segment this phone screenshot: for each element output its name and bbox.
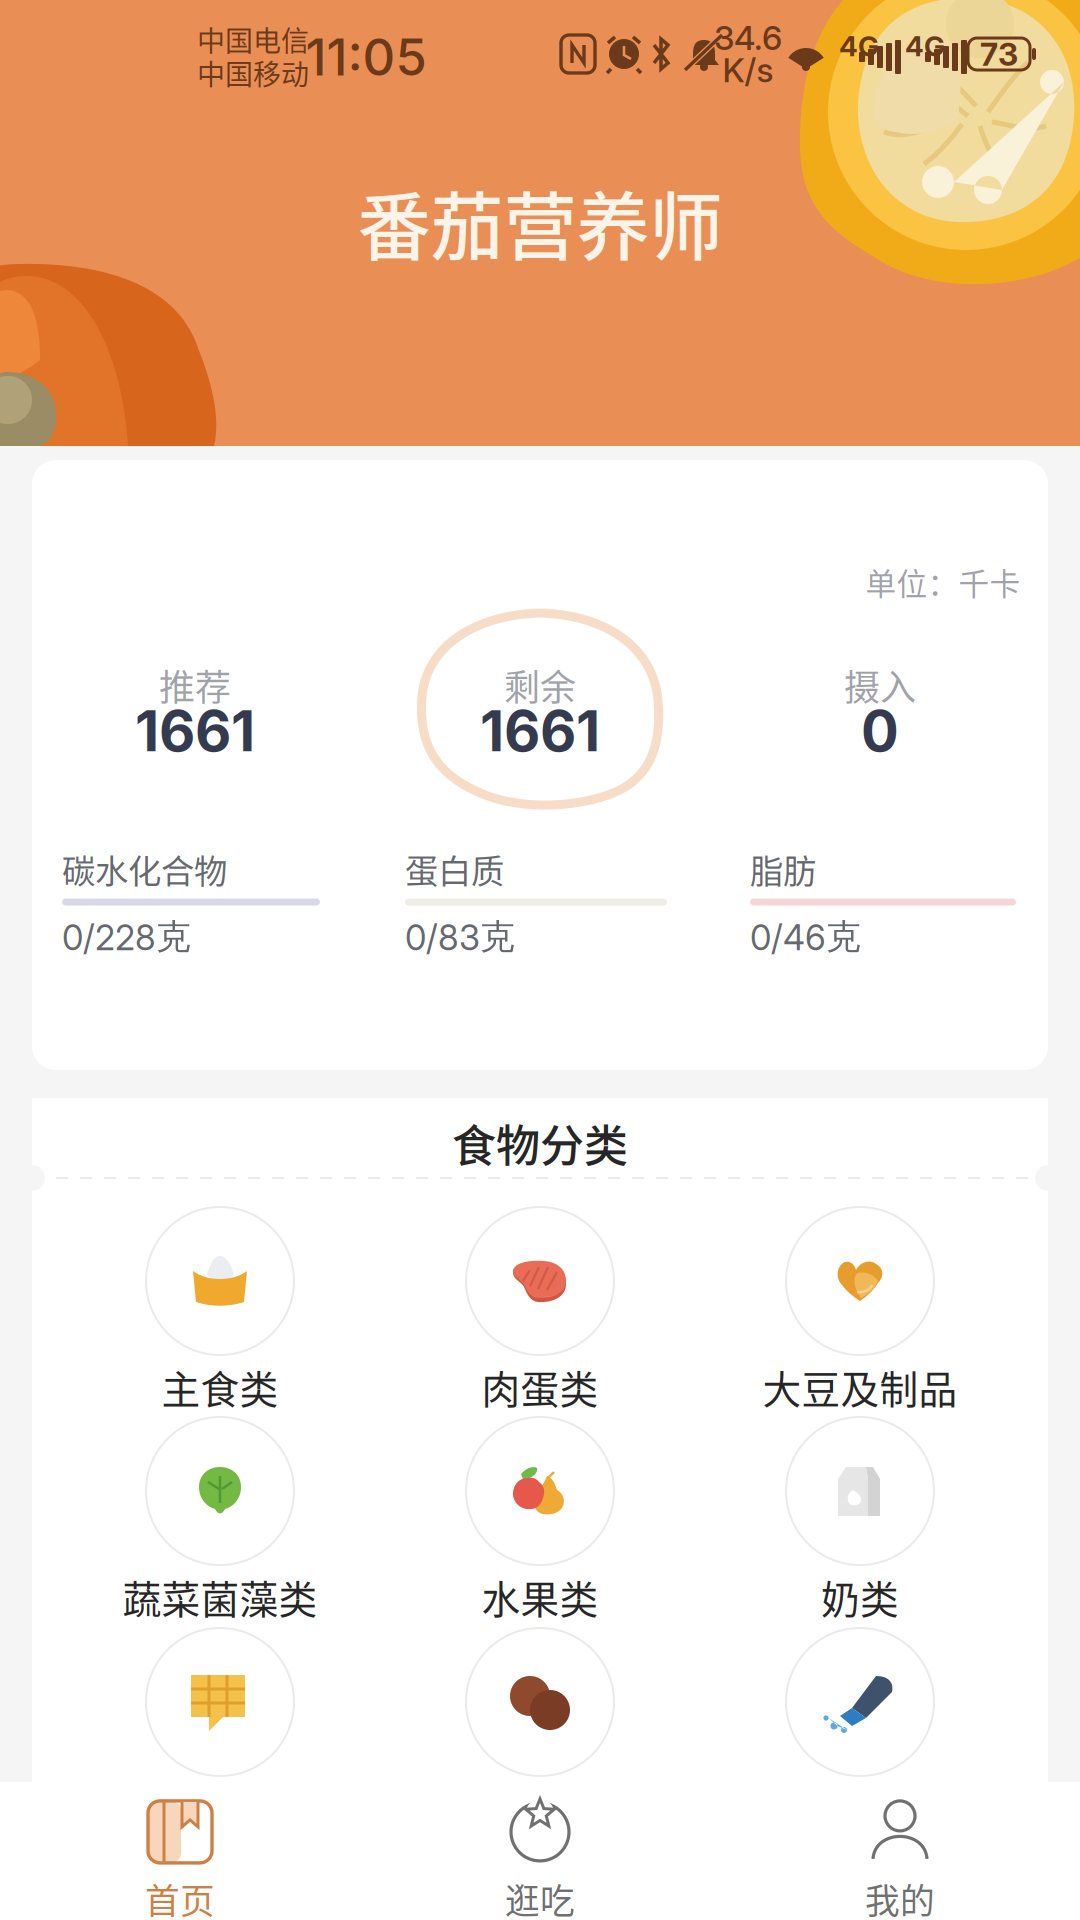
button[interactable]: 首页 bbox=[0, 1800, 360, 1920]
staticText: K/s bbox=[722, 50, 773, 90]
staticText: 中国电信 bbox=[197, 19, 309, 59]
staticText: 4G bbox=[839, 29, 879, 63]
button[interactable]: 蔬菜菌藻类 bbox=[60, 1341, 380, 1641]
staticText: 单位：千卡 bbox=[865, 560, 1020, 604]
staticText: 首页 bbox=[145, 1874, 215, 1920]
staticText: 水果类 bbox=[481, 1569, 598, 1625]
staticText: 碳水化合物 bbox=[62, 845, 227, 893]
staticText: 脂肪 bbox=[750, 845, 816, 893]
button[interactable]: 肉蛋类 bbox=[380, 1131, 700, 1431]
button[interactable]: 坚果类 bbox=[380, 1552, 700, 1852]
staticText: 番茄营养师 bbox=[357, 169, 722, 275]
staticText: 剩余 bbox=[504, 659, 576, 711]
staticText: 调味品 bbox=[801, 1780, 918, 1836]
staticText: 中国移动 bbox=[197, 52, 309, 93]
button[interactable]: 水果类 bbox=[380, 1341, 700, 1641]
button[interactable]: 零食类 bbox=[60, 1552, 380, 1852]
staticText: 坚果类 bbox=[481, 1780, 598, 1836]
staticText: 食物分类 bbox=[452, 1111, 628, 1175]
staticText: 0/83克 bbox=[405, 915, 515, 959]
staticText: 肉蛋类 bbox=[481, 1359, 598, 1415]
staticText: 奶类 bbox=[821, 1569, 899, 1625]
staticText: 4G bbox=[905, 29, 945, 63]
button[interactable]: 大豆及制品 bbox=[700, 1131, 1020, 1431]
staticText: 逛吃 bbox=[505, 1874, 575, 1920]
button[interactable]: 奶类 bbox=[700, 1341, 1020, 1641]
staticText: 1661 bbox=[135, 697, 255, 765]
staticText: 蔬菜菌藻类 bbox=[122, 1569, 317, 1625]
staticText: 推荐 bbox=[159, 659, 231, 711]
staticText: 0 bbox=[861, 697, 899, 765]
staticText: 0/228克 bbox=[62, 915, 191, 959]
staticText: 0/46克 bbox=[750, 915, 861, 959]
staticText: 1661 bbox=[480, 697, 600, 765]
button[interactable]: 主食类 bbox=[60, 1131, 380, 1431]
staticText: 零食类 bbox=[161, 1780, 278, 1836]
staticText: 主食类 bbox=[161, 1359, 278, 1415]
staticText: 摄入 bbox=[844, 659, 916, 711]
button[interactable]: 我的 bbox=[720, 1800, 1080, 1920]
staticText: 大豆及制品 bbox=[762, 1359, 957, 1415]
button[interactable]: 调味品 bbox=[700, 1552, 1020, 1852]
staticText: 我的 bbox=[865, 1874, 935, 1920]
staticText: 蛋白质 bbox=[405, 845, 504, 893]
button[interactable]: 逛吃 bbox=[360, 1800, 720, 1920]
staticText: 34.6 bbox=[714, 18, 782, 58]
staticText: 11:05 bbox=[305, 26, 426, 88]
staticText: 73 bbox=[980, 35, 1018, 73]
